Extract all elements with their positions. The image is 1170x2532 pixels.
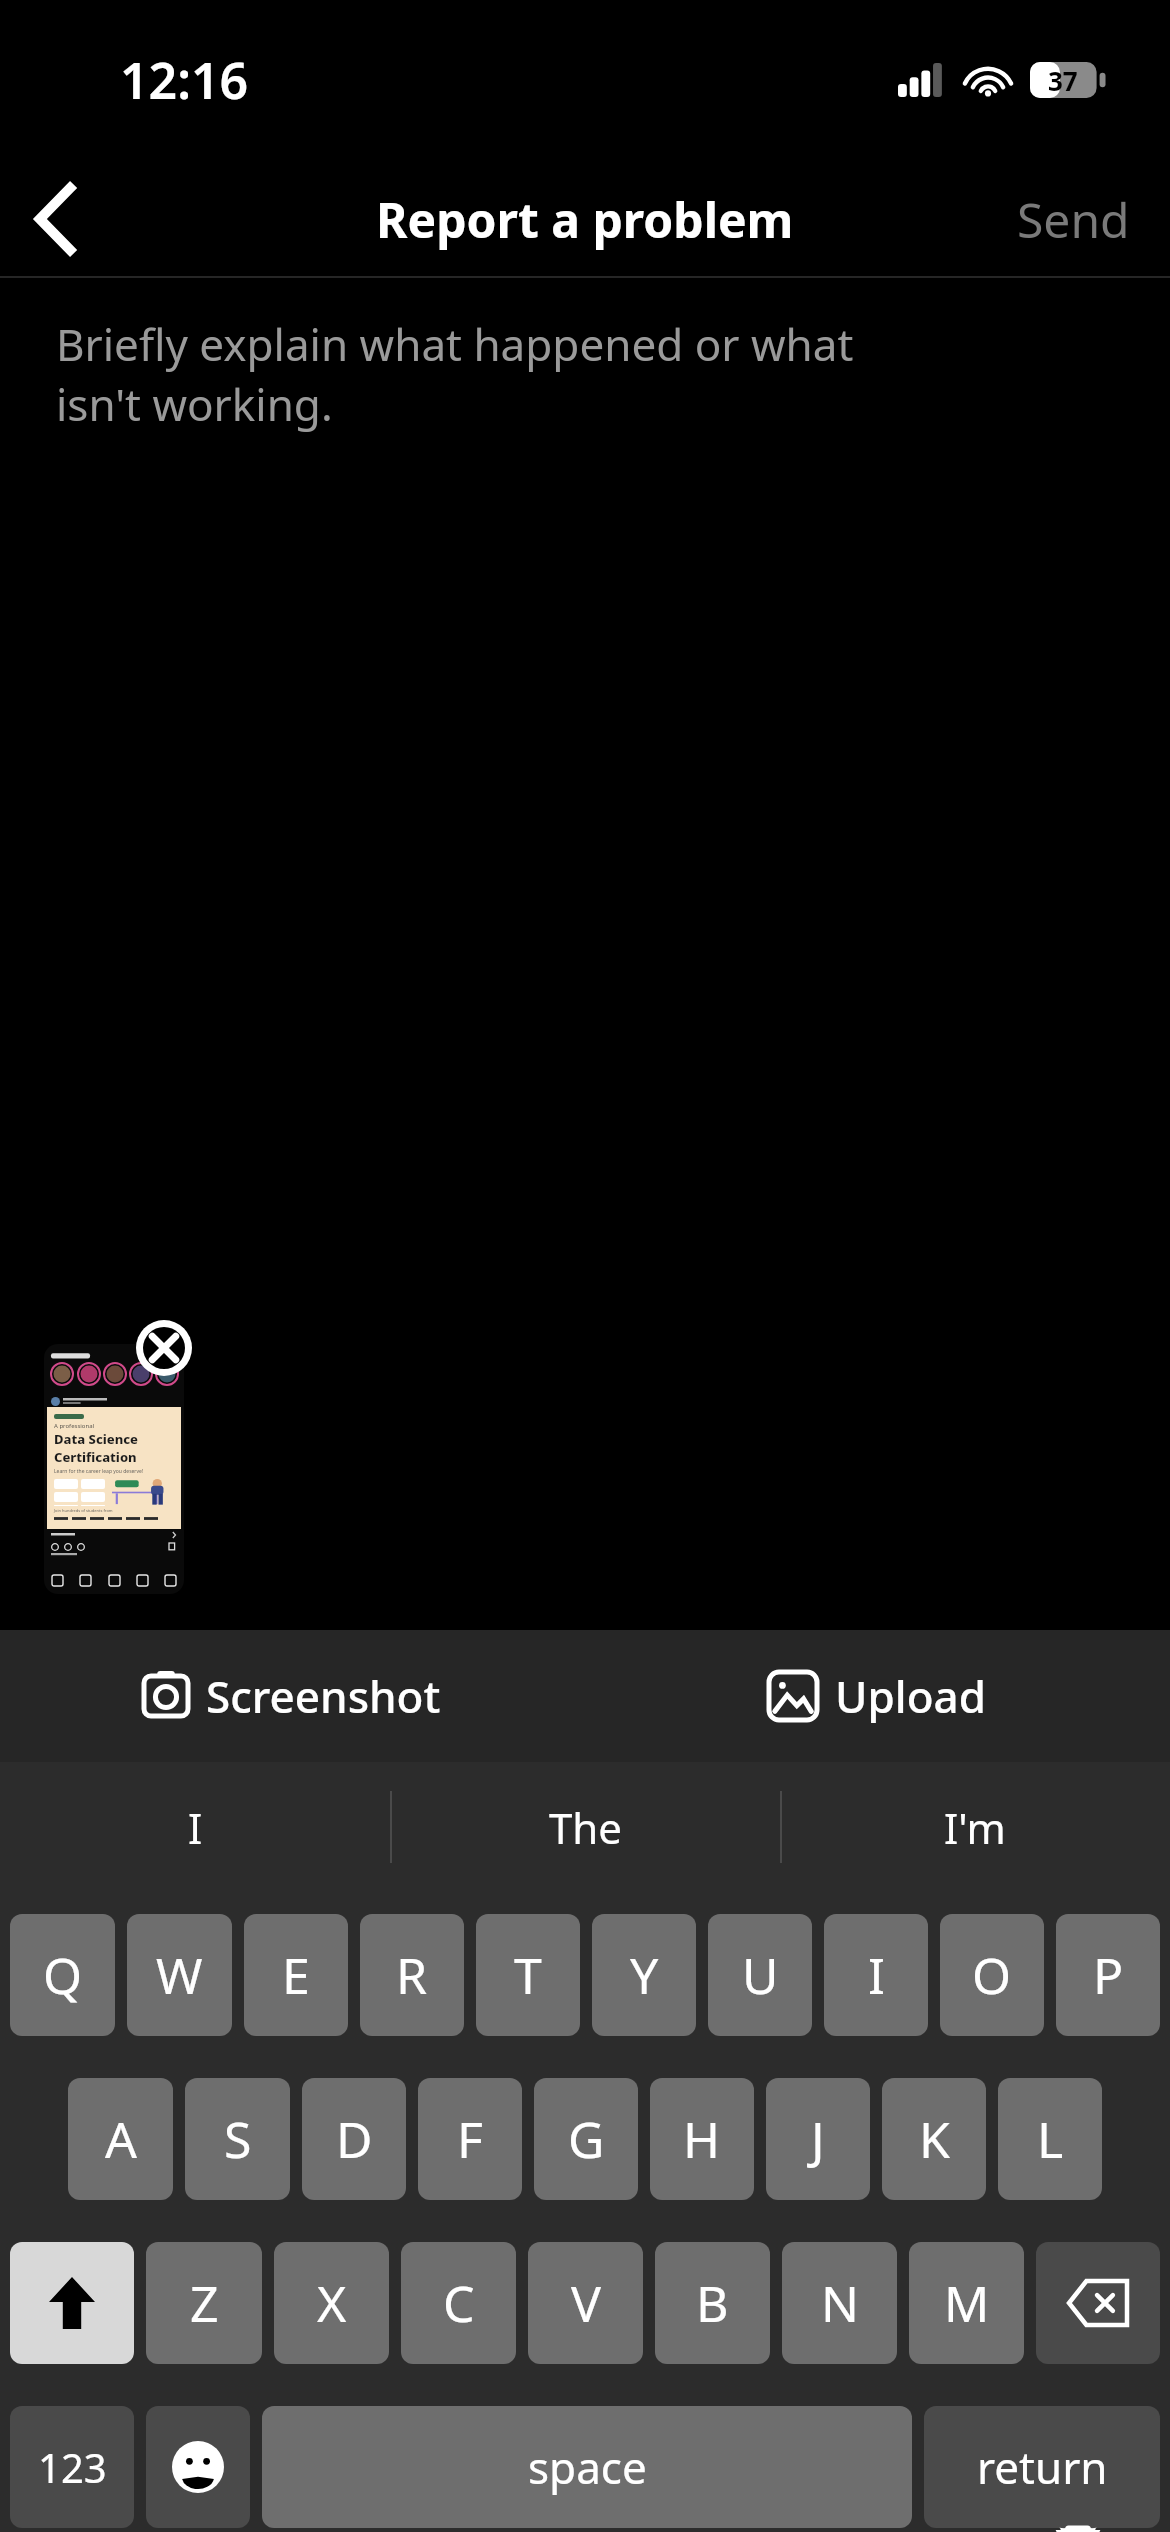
button[interactable]: S	[185, 2078, 290, 2200]
staticText: The	[549, 1799, 622, 1856]
button[interactable]: Upload	[585, 1630, 1170, 1762]
staticText: G	[568, 2105, 605, 2173]
staticText: T	[514, 1941, 542, 2009]
button[interactable]: N	[782, 2242, 897, 2364]
button[interactable]: U	[708, 1914, 812, 2036]
button[interactable]: Send	[977, 167, 1170, 272]
staticText: F	[457, 2105, 483, 2173]
button[interactable]: D	[302, 2078, 406, 2200]
staticText: P	[1093, 1941, 1124, 2009]
button[interactable]: A professional	[44, 1344, 184, 1594]
button[interactable]: O	[940, 1914, 1044, 2036]
staticText: E	[282, 1941, 310, 2009]
button[interactable]: M	[909, 2242, 1024, 2364]
staticText: D	[336, 2105, 373, 2173]
button[interactable]: I	[824, 1914, 928, 2036]
staticText: Learn for the career leap you deserve!	[54, 1468, 144, 1475]
button[interactable]: Z	[146, 2242, 262, 2364]
staticText: Send	[1017, 187, 1130, 252]
button[interactable]: Backspace	[1036, 2242, 1160, 2364]
button[interactable]: T	[476, 1914, 580, 2036]
button[interactable]: K	[882, 2078, 986, 2200]
button[interactable]: Screenshot	[0, 1630, 585, 1762]
staticText: 37	[1048, 63, 1078, 98]
staticText: Data Science	[54, 1430, 138, 1448]
staticText: B	[696, 2269, 729, 2337]
staticText: Report a problem	[376, 187, 794, 252]
button[interactable]: Shift	[10, 2242, 134, 2364]
button[interactable]: H	[650, 2078, 754, 2200]
staticText: V	[571, 2269, 601, 2337]
staticText: I'm	[944, 1799, 1006, 1856]
staticText: W	[156, 1941, 203, 2009]
staticText: X	[317, 2269, 347, 2337]
staticText: K	[919, 2105, 950, 2173]
staticText: L	[1037, 2105, 1064, 2173]
staticText: Screenshot	[206, 1666, 441, 1726]
staticText: A professional	[54, 1422, 95, 1430]
button[interactable]: L	[998, 2078, 1102, 2200]
staticText: Join hundreds of students from	[54, 1508, 113, 1513]
staticText: A	[105, 2105, 137, 2173]
button[interactable]: Emoji	[146, 2406, 250, 2528]
staticText: Certification	[54, 1448, 137, 1466]
staticText: N	[821, 2269, 859, 2337]
button[interactable]: X	[274, 2242, 389, 2364]
staticText: R	[396, 1941, 428, 2009]
button[interactable]: V	[528, 2242, 643, 2364]
button[interactable]: Y	[592, 1914, 696, 2036]
button[interactable]: return	[924, 2406, 1160, 2528]
staticText: J	[811, 2105, 825, 2173]
button[interactable]: The	[390, 1762, 780, 1892]
staticText: I	[188, 1799, 203, 1856]
button[interactable]: Q	[10, 1914, 115, 2036]
button[interactable]: R	[360, 1914, 464, 2036]
button[interactable]: W	[127, 1914, 232, 2036]
staticText: U	[742, 1941, 779, 2009]
button[interactable]: F	[418, 2078, 522, 2200]
button[interactable]: Back	[0, 164, 110, 274]
staticText: C	[443, 2269, 475, 2337]
button[interactable]: E	[244, 1914, 348, 2036]
button[interactable]: J	[766, 2078, 870, 2200]
button[interactable]: C	[401, 2242, 516, 2364]
button[interactable]: I	[0, 1762, 390, 1892]
staticText: return	[977, 2437, 1108, 2497]
staticText: Q	[43, 1941, 83, 2009]
button[interactable]: Dictation	[1030, 2528, 1126, 2532]
staticText: H	[683, 2105, 721, 2173]
staticText: 123	[38, 2440, 107, 2494]
button[interactable]: B	[655, 2242, 770, 2364]
staticText: Briefly explain what happened or what is…	[56, 314, 854, 434]
staticText: O	[972, 1941, 1012, 2009]
staticText: Upload	[835, 1666, 986, 1726]
staticText: Y	[630, 1941, 659, 2009]
staticText: I	[868, 1941, 885, 2009]
button[interactable]: G	[534, 2078, 638, 2200]
button[interactable]: I'm	[780, 1762, 1170, 1892]
staticText: S	[224, 2105, 252, 2173]
staticText: M	[944, 2269, 990, 2337]
staticText: 12:16	[120, 46, 249, 114]
button[interactable]: Remove screenshot	[136, 1320, 192, 1376]
button[interactable]: A	[68, 2078, 173, 2200]
staticText: Z	[190, 2269, 219, 2337]
button[interactable]: 123	[10, 2406, 134, 2528]
button[interactable]: P	[1056, 1914, 1160, 2036]
staticText: space	[528, 2437, 647, 2497]
button[interactable]: space	[262, 2406, 912, 2528]
